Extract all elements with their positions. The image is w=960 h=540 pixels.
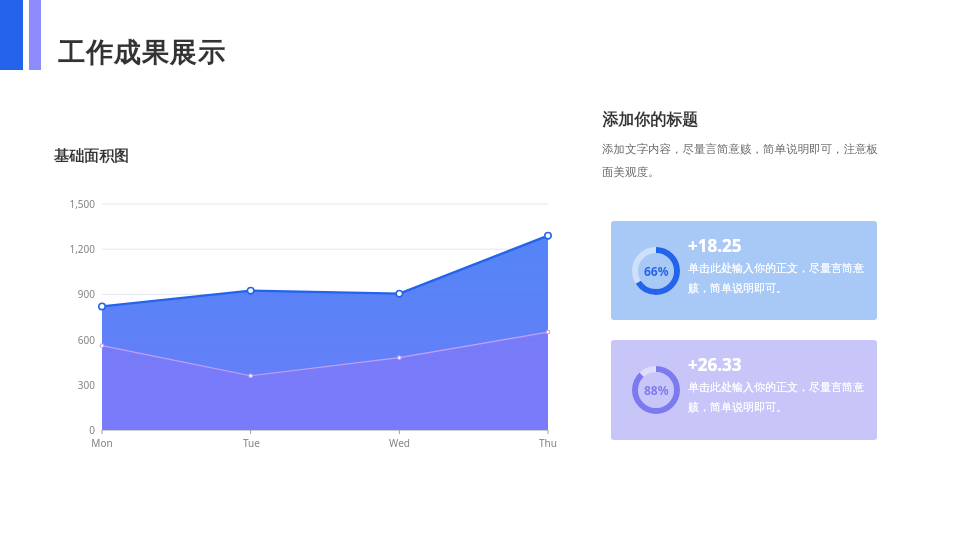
staticText: 添加文字内容，尽量言简意赅，简单说明即可，注意板面美观度。 (602, 142, 880, 180)
button[interactable]: 88% (611, 340, 877, 440)
staticText: 1,500 (69, 197, 95, 211)
staticText: 单击此处输入你的正文，尽量言简意赅，简单说明即可。 (688, 261, 868, 295)
staticText: Wed (389, 436, 410, 450)
staticText: Mon (91, 436, 113, 450)
staticText: 600 (77, 333, 95, 347)
staticText: 1,200 (69, 242, 95, 256)
staticText: 88% (644, 382, 669, 398)
staticText: 基础面积图 (54, 147, 129, 166)
staticText: +26.33 (688, 353, 742, 376)
staticText: 单击此处输入你的正文，尽量言简意赅，简单说明即可。 (688, 380, 868, 414)
staticText: Tue (243, 436, 260, 450)
staticText: 300 (77, 378, 95, 392)
button[interactable]: 66% (611, 221, 877, 320)
staticText: 66% (644, 263, 669, 279)
staticText: 工作成果展示 (57, 36, 225, 70)
staticText: 900 (77, 287, 95, 301)
staticText: 0 (89, 423, 95, 437)
staticText: +18.25 (688, 234, 742, 257)
staticText: Thu (539, 436, 557, 450)
staticText: 添加你的标题 (602, 110, 698, 130)
